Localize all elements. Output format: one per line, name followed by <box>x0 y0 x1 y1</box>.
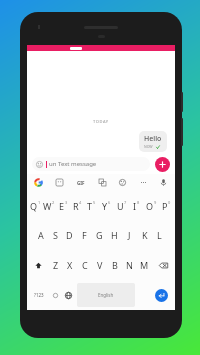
button[interactable]: R <box>70 191 84 220</box>
button[interactable]: U <box>114 191 129 220</box>
staticText: I <box>133 200 137 212</box>
staticText: ?123 <box>34 292 44 298</box>
button[interactable]: Q <box>28 191 42 220</box>
button[interactable]: New message <box>155 157 170 172</box>
button[interactable]: B <box>107 250 122 280</box>
button[interactable]: O <box>144 191 159 220</box>
button[interactable]: I <box>129 191 144 220</box>
staticText: 0 <box>168 200 171 205</box>
staticText: 2 <box>52 200 55 205</box>
button[interactable]: E <box>56 191 70 220</box>
button[interactable]: Hello <box>139 131 167 152</box>
button[interactable]: un Text message <box>32 157 150 171</box>
staticText: P <box>162 200 168 212</box>
button[interactable]: A <box>34 220 48 250</box>
staticText: X <box>67 259 73 271</box>
button[interactable]: Y <box>99 191 114 220</box>
staticText: R <box>73 200 79 212</box>
button[interactable]: D <box>62 220 77 250</box>
button[interactable]: M <box>137 250 152 280</box>
staticText: Y <box>102 200 108 212</box>
button[interactable]: Change language <box>62 281 75 309</box>
staticText: W <box>43 200 52 212</box>
button[interactable]: J <box>122 220 137 250</box>
button[interactable]: Voice input <box>158 177 169 188</box>
staticText: A <box>38 229 44 241</box>
button[interactable]: Z <box>49 250 63 280</box>
staticText: Hello <box>144 134 162 144</box>
staticText: English <box>98 292 114 298</box>
staticText: 9 <box>154 200 157 205</box>
staticText: E <box>59 200 65 212</box>
button[interactable]: C <box>77 250 92 280</box>
button[interactable]: W <box>42 191 56 220</box>
staticText: Q <box>30 200 38 212</box>
staticText: O <box>146 200 154 212</box>
staticText: J <box>128 229 131 241</box>
staticText: S <box>53 229 58 241</box>
staticText: M <box>140 259 149 271</box>
staticText: F <box>82 229 87 241</box>
button[interactable]: V <box>92 250 107 280</box>
staticText: L <box>157 229 162 241</box>
staticText: C <box>82 259 88 271</box>
staticText: D <box>66 229 73 241</box>
button[interactable]: N <box>122 250 137 280</box>
staticText: G <box>96 229 103 241</box>
button[interactable]: Shift <box>28 250 49 280</box>
button[interactable]: Translate <box>97 177 108 188</box>
staticText: N <box>126 259 133 271</box>
staticText: B <box>112 259 118 271</box>
staticText: NOW <box>144 144 153 149</box>
button[interactable]: Theme <box>117 177 128 188</box>
button[interactable]: H <box>107 220 122 250</box>
staticText: GIF <box>77 180 85 186</box>
button[interactable]: T <box>84 191 99 220</box>
button[interactable]: More options <box>138 177 149 188</box>
staticText: 4 <box>79 200 82 205</box>
button[interactable]: X <box>63 250 77 280</box>
staticText: 1 <box>38 200 41 205</box>
button[interactable]: English <box>77 283 135 307</box>
staticText: 5 <box>93 200 96 205</box>
staticText: 7 <box>124 200 127 205</box>
staticText: T <box>87 200 93 212</box>
staticText: U <box>117 200 124 212</box>
staticText: 8 <box>137 200 140 205</box>
staticText: un Text message <box>49 160 97 168</box>
button[interactable]: ?123 <box>29 281 49 309</box>
staticText: V <box>97 259 103 271</box>
staticText: 6 <box>108 200 111 205</box>
button[interactable]: Stickers <box>54 177 65 188</box>
button[interactable]: F <box>77 220 92 250</box>
button[interactable]: P <box>159 191 174 220</box>
button[interactable]: S <box>48 220 62 250</box>
staticText: Z <box>53 259 59 271</box>
staticText: H <box>111 229 118 241</box>
button[interactable]: Enter <box>155 289 168 302</box>
staticText: 3 <box>65 200 68 205</box>
button[interactable]: GIF <box>74 176 87 189</box>
staticText: TODAY <box>93 119 109 124</box>
button[interactable]: Backspace <box>152 250 174 280</box>
button[interactable]: L <box>152 220 167 250</box>
button[interactable]: G <box>92 220 107 250</box>
button[interactable]: K <box>137 220 152 250</box>
button[interactable]: Emoji <box>49 281 62 309</box>
staticText: K <box>142 229 148 241</box>
button[interactable]: Google <box>33 177 44 188</box>
